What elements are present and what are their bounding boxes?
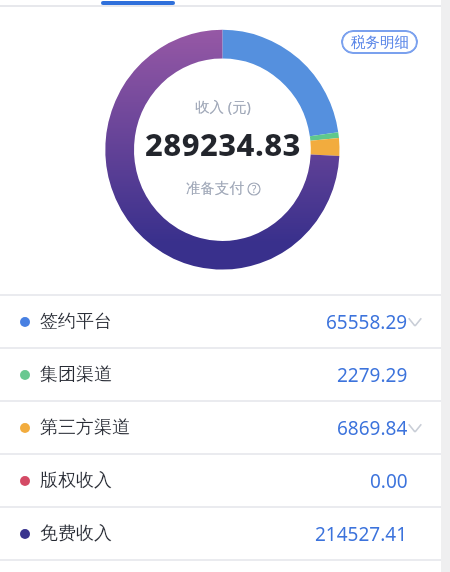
button[interactable]: 帮助 bbox=[247, 182, 261, 196]
staticText: 版权收入 bbox=[40, 469, 112, 492]
button[interactable]: 版权收入 bbox=[0, 455, 450, 506]
staticText: 集团渠道 bbox=[40, 363, 112, 386]
button[interactable]: 免费收入 bbox=[0, 508, 450, 559]
staticText: 0.00 bbox=[370, 468, 408, 494]
staticText: 65558.29 bbox=[326, 309, 408, 335]
staticText: 289234.83 bbox=[145, 123, 301, 165]
button[interactable]: 集团渠道 bbox=[0, 349, 450, 400]
staticText: 收入 (元) bbox=[195, 96, 251, 116]
button[interactable]: 税务明细 bbox=[341, 30, 418, 54]
staticText: 6869.84 bbox=[337, 415, 408, 441]
staticText: 214527.41 bbox=[315, 521, 408, 547]
staticText: 税务明细 bbox=[351, 33, 409, 51]
staticText: 第三方渠道 bbox=[40, 416, 130, 439]
staticText: 免费收入 bbox=[40, 522, 112, 545]
staticText: 准备支付 bbox=[186, 179, 244, 197]
staticText: 签约平台 bbox=[40, 310, 112, 333]
button[interactable]: 第三方渠道 bbox=[0, 402, 450, 453]
button[interactable]: 签约平台 bbox=[0, 296, 450, 347]
staticText: 2279.29 bbox=[337, 362, 408, 388]
staticText: ? bbox=[252, 182, 257, 196]
